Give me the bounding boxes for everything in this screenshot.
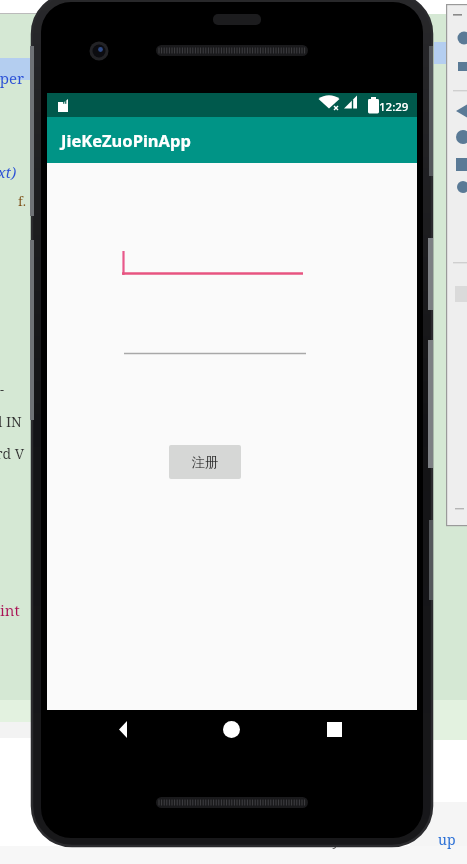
- button[interactable]: Password input field: [124, 333, 306, 357]
- button[interactable]: Back: [117, 716, 159, 748]
- button[interactable]: [169, 445, 241, 479]
- button[interactable]: Username input field: [122, 243, 304, 269]
- button[interactable]: Recent apps: [314, 716, 356, 748]
- button[interactable]: Home: [211, 716, 253, 748]
- button[interactable]: [47, 117, 417, 163]
